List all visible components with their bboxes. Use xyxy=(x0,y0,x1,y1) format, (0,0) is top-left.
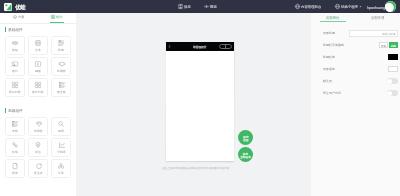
staticText: 小程序 xyxy=(57,150,66,154)
button[interactable]: 保存 设置 xyxy=(238,130,253,145)
staticText: 保存 xyxy=(184,5,191,9)
button[interactable]: 优惠券 xyxy=(28,117,48,136)
button[interactable]: 图片 xyxy=(5,57,25,76)
button[interactable]: 切换小程序 xyxy=(335,4,362,9)
button[interactable]: Toggle xyxy=(387,90,398,96)
button[interactable]: 按钮 xyxy=(5,36,25,55)
staticText: 页面管理 xyxy=(371,16,385,20)
staticText: 标题 xyxy=(58,48,64,52)
staticText: hpanhuang xyxy=(367,5,385,9)
staticText: 默认页 xyxy=(323,79,332,83)
staticText: 白色 xyxy=(391,44,397,47)
staticText: 保存 立即发布 xyxy=(240,152,251,158)
staticText: 富文本 xyxy=(34,171,43,175)
staticText: 表单 xyxy=(12,171,18,175)
staticText: 内容管理后台 xyxy=(301,5,322,9)
staticText: 高级组件 xyxy=(8,108,23,113)
button[interactable]: 视频 xyxy=(28,57,48,76)
staticText: 图片 xyxy=(12,69,18,73)
button[interactable]: Account xyxy=(385,1,396,12)
button[interactable]: 优蛙 xyxy=(4,3,26,11)
button[interactable]: 小程序 xyxy=(51,138,71,157)
staticText: 组件 xyxy=(56,15,63,19)
staticText: 按钮 xyxy=(12,48,18,52)
staticText: 单页面设计 xyxy=(193,45,207,48)
staticText: 标题栏色 xyxy=(323,55,335,59)
button[interactable]: 方案 xyxy=(0,13,38,23)
button[interactable]: 表单 xyxy=(5,159,25,178)
button[interactable]: 轮播图 xyxy=(51,57,71,76)
staticText: 视频 xyxy=(35,69,41,73)
button[interactable]: 白色 xyxy=(389,42,398,48)
staticText: 图片列表 xyxy=(32,90,44,94)
staticText: 导航 xyxy=(12,129,18,133)
button[interactable]: 外链 xyxy=(5,138,25,157)
button[interactable]: 内容管理后台 xyxy=(295,4,322,9)
button[interactable]: 图文集 xyxy=(51,78,71,97)
staticText: 禁止用户访问 xyxy=(323,91,341,95)
staticText: 优惠券 xyxy=(34,129,43,133)
button[interactable]: 黑色 xyxy=(379,42,388,48)
staticText: 保存 设置 xyxy=(243,135,249,141)
staticText: 方案 xyxy=(18,15,25,19)
staticText: 搜索 xyxy=(58,129,64,133)
button[interactable]: 搜索 xyxy=(51,117,71,136)
staticText: 文本 xyxy=(35,48,41,52)
button[interactable]: 定位 xyxy=(28,138,48,157)
staticText: 轮播图 xyxy=(57,69,66,73)
staticText: 切换小程序 xyxy=(341,5,358,9)
staticText: 页面标题 xyxy=(323,31,335,35)
button[interactable]: 商品列表 xyxy=(5,78,25,97)
button[interactable]: Toggle xyxy=(387,78,398,84)
staticText: 请输入标题 xyxy=(382,32,396,35)
button[interactable]: 富文本 xyxy=(28,159,48,178)
staticText: 点击上面的手机屏幕从左侧拖入组件到手机屏幕中添加内容 xyxy=(162,166,230,169)
staticText: 标题栏字体颜色 xyxy=(323,43,344,47)
button[interactable]: 预览 xyxy=(204,4,217,9)
button[interactable]: 页面属性 xyxy=(311,13,355,22)
staticText: 优蛙 xyxy=(15,4,26,11)
staticText: 图文集 xyxy=(57,90,66,94)
button[interactable]: 组件 xyxy=(38,13,76,23)
button[interactable]: 保存 立即发布 xyxy=(238,147,253,162)
staticText: 定位 xyxy=(35,150,41,154)
staticText: 商品列表 xyxy=(9,90,21,94)
staticText: 预览 xyxy=(210,5,217,9)
staticText: 黑色 xyxy=(381,44,387,47)
button[interactable]: Page background colour xyxy=(388,66,398,72)
button[interactable]: 导航 xyxy=(5,117,25,136)
staticText: 外链 xyxy=(12,150,18,154)
staticText: 分享 xyxy=(58,171,64,175)
button[interactable]: 文本 xyxy=(28,36,48,55)
staticText: 页面属性 xyxy=(326,16,340,20)
button[interactable]: 标题 xyxy=(51,36,71,55)
staticText: 基础组件 xyxy=(8,27,23,32)
button[interactable]: 图片列表 xyxy=(28,78,48,97)
button[interactable]: 分享 xyxy=(51,159,71,178)
button[interactable]: 页面管理 xyxy=(355,13,400,22)
button[interactable]: 保存 xyxy=(178,4,191,9)
staticText: 页面底色 xyxy=(323,67,335,71)
